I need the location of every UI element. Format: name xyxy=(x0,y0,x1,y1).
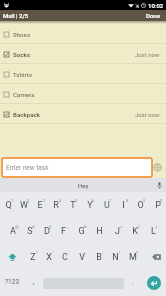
staticText: # xyxy=(32,224,35,229)
staticText: O xyxy=(137,200,144,211)
staticText: Just now xyxy=(135,51,160,58)
staticText: C xyxy=(62,252,68,263)
staticText: _ xyxy=(67,224,69,229)
staticText: Y xyxy=(87,200,93,211)
staticText: . xyxy=(132,277,135,286)
staticText: 6 xyxy=(92,198,95,203)
staticText: 2 xyxy=(27,198,30,203)
staticText: Tshirts xyxy=(13,71,32,78)
button[interactable]: P xyxy=(149,192,166,218)
staticText: L xyxy=(151,226,156,237)
button[interactable]: Backspace xyxy=(141,244,166,270)
staticText: X xyxy=(46,252,52,263)
button[interactable]: V xyxy=(73,244,90,270)
button[interactable]: Voice input xyxy=(152,178,166,192)
button[interactable]: , xyxy=(25,270,42,296)
button[interactable]: T xyxy=(64,192,81,218)
button[interactable]: O xyxy=(132,192,149,218)
staticText: E xyxy=(37,200,43,211)
button[interactable]: Y xyxy=(81,192,98,218)
staticText: N xyxy=(112,252,119,263)
staticText: 8 xyxy=(126,198,129,203)
button[interactable]: J xyxy=(108,218,126,244)
staticText: Just now xyxy=(135,111,160,118)
button[interactable]: C xyxy=(57,244,73,270)
staticText: 0 xyxy=(160,198,163,203)
staticText: T xyxy=(70,200,76,211)
staticText: V xyxy=(79,252,85,263)
button[interactable]: I xyxy=(115,192,132,218)
staticText: + xyxy=(120,224,123,229)
staticText: S xyxy=(27,226,33,237)
button[interactable]: Enter new task xyxy=(2,158,152,177)
button[interactable]: Z xyxy=(25,244,41,270)
staticText: 1 xyxy=(11,198,14,203)
button[interactable]: E xyxy=(32,192,48,218)
button[interactable]: Done xyxy=(142,10,166,21)
staticText: Enter new task xyxy=(6,164,49,172)
staticText: Done xyxy=(146,12,160,19)
button[interactable]: K xyxy=(126,218,144,244)
staticText: @ xyxy=(15,224,19,229)
button[interactable]: Socks xyxy=(0,44,166,64)
staticText: 4 xyxy=(59,198,62,203)
button[interactable]: X xyxy=(41,244,57,270)
button[interactable]: S xyxy=(21,218,38,244)
staticText: ) xyxy=(156,224,158,229)
button[interactable]: Enter xyxy=(147,276,161,290)
button[interactable]: N xyxy=(107,244,124,270)
staticText: P xyxy=(155,200,161,211)
button[interactable]: Mall | 2/5 xyxy=(0,10,32,21)
button[interactable]: Camera xyxy=(0,84,166,104)
button[interactable]: H xyxy=(90,218,108,244)
button[interactable]: W xyxy=(16,192,32,218)
staticText: M xyxy=(129,252,137,263)
button[interactable]: Tshirts xyxy=(0,64,166,84)
staticText: Backpack xyxy=(13,111,41,118)
staticText: K xyxy=(132,226,138,237)
button[interactable]: ?123 xyxy=(0,270,25,296)
staticText: ! xyxy=(119,250,121,255)
staticText: ? xyxy=(136,250,138,255)
button[interactable]: R xyxy=(48,192,64,218)
button[interactable]: A xyxy=(4,218,21,244)
button[interactable]: Shift xyxy=(0,244,25,270)
staticText: Socks xyxy=(13,51,30,58)
button[interactable]: Q xyxy=(0,192,16,218)
button[interactable]: L xyxy=(144,218,162,244)
button[interactable]: F xyxy=(55,218,72,244)
staticText: 10:02 xyxy=(148,2,164,9)
staticText: D xyxy=(44,226,50,237)
staticText: ; xyxy=(102,250,103,255)
staticText: Q xyxy=(5,200,12,211)
button[interactable]: Backpack xyxy=(0,104,166,124)
staticText: 3 xyxy=(43,198,46,203)
staticText: 7 xyxy=(109,198,112,203)
button[interactable]: D xyxy=(38,218,55,244)
staticText: W xyxy=(20,200,28,211)
staticText: - xyxy=(102,224,104,229)
staticText: : xyxy=(85,250,86,255)
staticText: ' xyxy=(69,250,70,255)
staticText: H xyxy=(96,226,103,237)
button[interactable]: Shoes xyxy=(0,24,166,44)
staticText: ?123 xyxy=(5,278,20,286)
staticText: R xyxy=(53,200,59,211)
staticText: Mall | 2/5 xyxy=(3,12,29,19)
button[interactable]: M xyxy=(124,244,141,270)
staticText: ( xyxy=(138,224,140,229)
staticText: * xyxy=(36,250,38,255)
staticText: 5 xyxy=(75,198,78,203)
button[interactable]: B xyxy=(90,244,107,270)
staticText: I xyxy=(122,200,125,211)
button[interactable]: G xyxy=(72,218,90,244)
staticText: U xyxy=(104,200,110,211)
staticText: " xyxy=(52,250,54,255)
staticText: Camera xyxy=(13,91,35,98)
staticText: Shoes xyxy=(13,31,31,38)
staticText: Z xyxy=(30,252,36,263)
button[interactable]: Add task xyxy=(153,163,162,172)
button[interactable]: U xyxy=(98,192,115,218)
